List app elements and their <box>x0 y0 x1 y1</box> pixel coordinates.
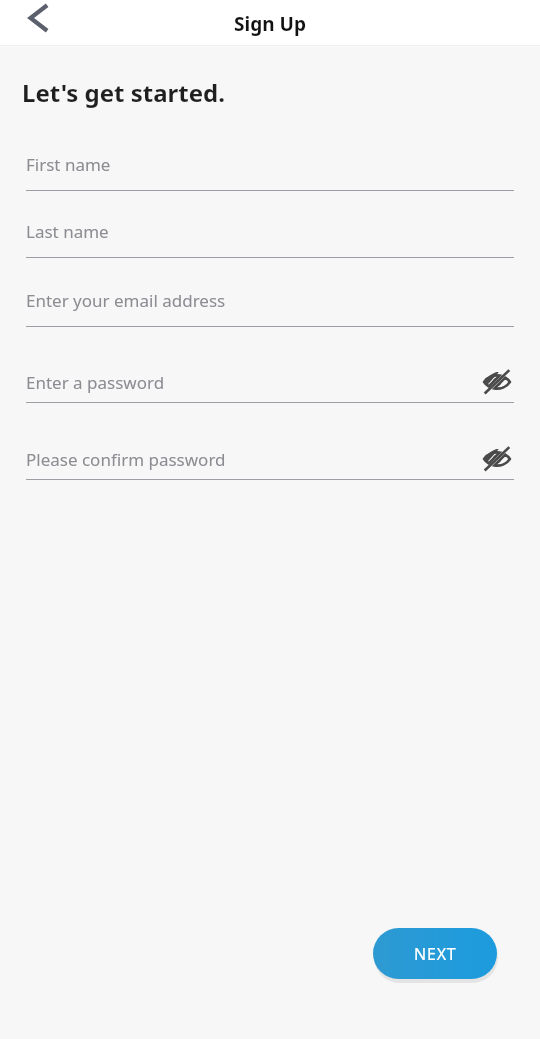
staticText: Please confirm password <box>26 448 480 471</box>
staticText: Sign Up <box>0 11 540 37</box>
button[interactable]: Enter a password <box>0 365 540 403</box>
button[interactable]: Back <box>14 0 62 36</box>
button[interactable]: Please confirm password <box>0 442 540 480</box>
button[interactable]: First name <box>0 153 540 191</box>
button[interactable]: Show password <box>480 442 514 476</box>
button[interactable]: Enter your email address <box>0 289 540 327</box>
button[interactable]: NEXT <box>373 928 497 979</box>
button[interactable]: Show password <box>480 365 514 399</box>
staticText: First name <box>26 153 514 176</box>
staticText: Let's get started. <box>22 76 225 109</box>
button[interactable]: Last name <box>0 220 540 258</box>
staticText: Enter your email address <box>26 289 514 312</box>
staticText: NEXT <box>414 943 457 965</box>
staticText: Enter a password <box>26 371 480 394</box>
staticText: Last name <box>26 220 514 243</box>
